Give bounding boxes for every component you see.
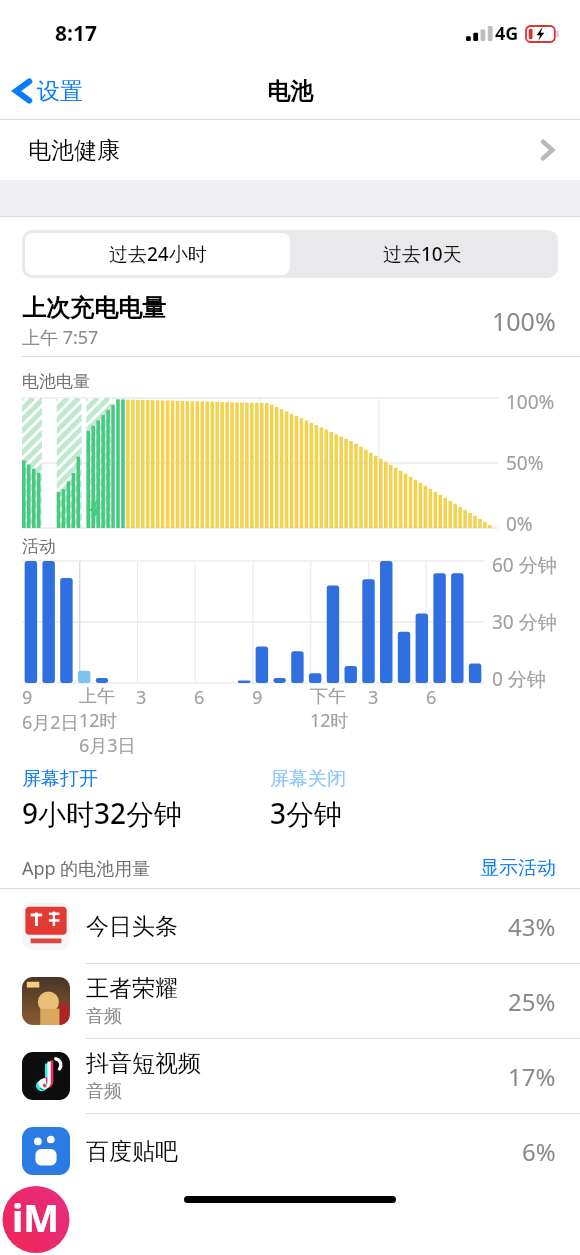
staticText: 3 [136, 685, 147, 710]
staticText: 25% [508, 985, 556, 1018]
button[interactable]: 设置 [0, 70, 95, 112]
staticText: 上次充电电量 [22, 293, 166, 323]
staticText: 活动 [22, 536, 56, 557]
button[interactable]: 显示活动 [480, 856, 556, 880]
staticText: 12时 [79, 708, 118, 733]
staticText: 王者荣耀 [86, 974, 178, 1003]
staticText: 6 [426, 685, 437, 710]
staticText: 8:17 [55, 19, 97, 48]
staticText: iM [12, 1191, 60, 1243]
staticText: 设置 [37, 77, 83, 106]
button[interactable]: 电池健康 [0, 120, 580, 180]
staticText: 上午 [79, 685, 115, 708]
staticText: 6月2日 [22, 710, 79, 735]
button[interactable]: 今日头条 [0, 889, 580, 963]
staticText: 今日头条 [86, 912, 178, 941]
staticText: 12时 [310, 708, 349, 733]
staticText: 百度贴吧 [86, 1137, 178, 1166]
staticText: 9 [252, 685, 263, 710]
staticText: 屏幕打开 [22, 767, 98, 791]
staticText: 上午 7:57 [22, 325, 99, 350]
staticText: 显示活动 [480, 856, 556, 880]
staticText: 屏幕关闭 [270, 767, 346, 791]
staticText: 电池健康 [28, 136, 120, 165]
staticText: 过去24小时 [109, 241, 207, 267]
staticText: 50% [506, 450, 544, 476]
staticText: 0% [506, 511, 533, 537]
staticText: 3 [368, 685, 379, 710]
staticText: 9 [22, 685, 33, 710]
staticText: 30 分钟 [492, 609, 557, 635]
staticText: 抖音短视频 [86, 1049, 201, 1078]
staticText: 4G [495, 21, 519, 46]
staticText: App 的电池用量 [22, 856, 151, 881]
staticText: 3分钟 [270, 794, 343, 832]
staticText: 电池电量 [22, 371, 90, 392]
staticText: 电池 [267, 77, 313, 106]
button[interactable]: 王者荣耀 [0, 964, 580, 1038]
staticText: 60 分钟 [492, 552, 557, 578]
staticText: 100% [506, 389, 555, 415]
staticText: 43% [508, 910, 556, 943]
button[interactable]: 过去10天 [290, 233, 555, 275]
staticText: 6月3日 [79, 733, 136, 758]
staticText: 17% [508, 1060, 556, 1093]
staticText: 6 [194, 685, 205, 710]
staticText: 0 分钟 [492, 666, 546, 692]
staticText: 过去10天 [383, 241, 462, 267]
staticText: 9小时32分钟 [22, 794, 183, 832]
staticText: 6% [522, 1135, 556, 1168]
button[interactable]: 百度贴吧 [0, 1114, 580, 1188]
button[interactable]: 抖音短视频 [0, 1039, 580, 1113]
button[interactable]: 过去24小时 [25, 233, 290, 275]
staticText: 100% [492, 304, 556, 338]
staticText: 音频 [86, 1005, 122, 1028]
staticText: 音频 [86, 1080, 122, 1103]
staticText: 下午 [310, 685, 346, 708]
